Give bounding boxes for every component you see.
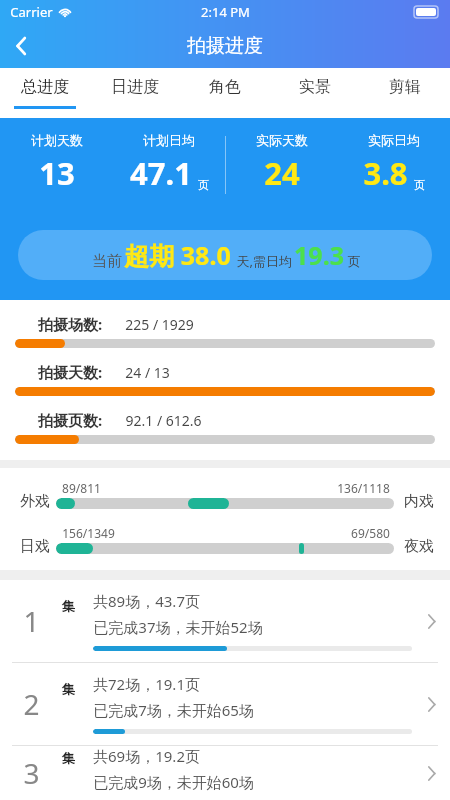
staticText: 拍摄进度 — [187, 34, 263, 58]
staticText: 页 — [198, 178, 209, 192]
button[interactable]: 2 — [0, 663, 450, 745]
staticText: 总进度 — [21, 77, 69, 97]
button[interactable]: Back — [0, 24, 44, 68]
staticText: 24 — [264, 152, 300, 194]
staticText: 2:14 PM — [201, 3, 250, 21]
staticText: 共69场，19.2页 — [93, 746, 200, 766]
staticText: 共89场，43.7页 — [93, 591, 200, 611]
staticText: 13 — [39, 152, 75, 194]
staticText: 内戏 — [402, 492, 436, 511]
staticText: 47.1 — [130, 152, 192, 194]
button[interactable]: 1 — [0, 580, 450, 662]
staticText: 夜戏 — [402, 537, 436, 556]
staticText: 69/580 — [351, 525, 390, 541]
staticText: 已完成7场，未开始65场 — [93, 700, 254, 720]
staticText: 拍摄场数: — [15, 314, 125, 334]
button[interactable]: 总进度 — [0, 68, 90, 118]
staticText: 超期 38.0 — [124, 238, 231, 272]
staticText: 2 — [23, 685, 40, 723]
staticText: 计划日均 — [143, 132, 195, 148]
staticText: 19.3 — [294, 238, 344, 272]
staticText: 92.1 / 612.6 — [125, 411, 202, 430]
staticText: 当前 — [90, 250, 124, 270]
staticText: 计划天数 — [31, 132, 83, 148]
staticText: 3.8 — [363, 152, 408, 194]
staticText: 实景 — [299, 77, 331, 97]
staticText: 页 — [414, 178, 425, 192]
staticText: 136/1118 — [337, 480, 390, 496]
staticText: 156/1349 — [62, 525, 115, 541]
button[interactable]: 角色 — [180, 68, 270, 118]
button[interactable]: 剪辑 — [360, 68, 450, 118]
button[interactable]: 实景 — [270, 68, 360, 118]
staticText: 日进度 — [111, 77, 159, 97]
staticText: 89/811 — [62, 480, 101, 496]
button[interactable]: 3 — [0, 746, 450, 800]
staticText: 外戏 — [14, 492, 56, 511]
button[interactable]: 当前 — [18, 230, 432, 280]
staticText: 拍摄页数: — [15, 410, 125, 430]
staticText: 天,需日均 — [231, 252, 294, 270]
staticText: 日戏 — [14, 537, 56, 556]
staticText: 24 / 13 — [125, 363, 170, 382]
staticText: Carrier — [10, 3, 53, 21]
staticText: 角色 — [209, 77, 241, 97]
staticText: 集 — [62, 750, 75, 766]
staticText: 实际日均 — [368, 132, 420, 148]
staticText: 集 — [62, 598, 75, 614]
button[interactable]: 日进度 — [90, 68, 180, 118]
staticText: 已完成9场，未开始60场 — [93, 772, 254, 792]
staticText: 已完成37场，未开始52场 — [93, 617, 263, 637]
staticText: 集 — [62, 681, 75, 697]
staticText: 实际天数 — [256, 132, 308, 148]
staticText: 剪辑 — [389, 77, 421, 97]
staticText: 页 — [344, 252, 361, 270]
staticText: 225 / 1929 — [125, 315, 194, 334]
staticText: 1 — [23, 602, 40, 640]
staticText: 共72场，19.1页 — [93, 674, 200, 694]
staticText: 拍摄天数: — [15, 362, 125, 382]
staticText: 3 — [23, 754, 40, 792]
